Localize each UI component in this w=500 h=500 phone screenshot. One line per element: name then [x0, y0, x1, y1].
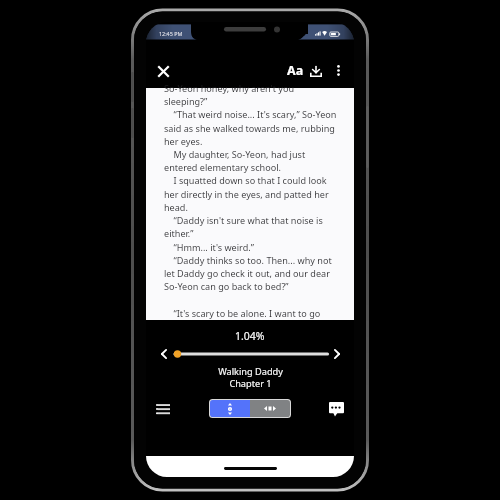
staticText: 12:45 PM [159, 30, 183, 37]
staticText: sleeping?” [164, 95, 208, 107]
staticText: said as she walked towards me, rubbing [164, 122, 335, 134]
button[interactable]: Horizontal scrolling [250, 400, 290, 417]
staticText: Aa [287, 62, 304, 79]
staticText: “Daddy isn't sure what that noise is [164, 214, 323, 226]
button[interactable]: Reading progress [171, 345, 329, 363]
staticText: “That weird noise... It's scary,” So-Yeo… [164, 108, 337, 120]
staticText: So-Yeon honey, why aren't you [164, 82, 295, 94]
staticText: her directly in the eyes, and patted her [164, 188, 329, 200]
button[interactable]: Close [152, 60, 174, 82]
staticText: “Daddy thinks so too. Then... why not [164, 254, 332, 266]
button[interactable]: Next page [327, 345, 346, 363]
staticText: entered elementary school. [164, 161, 281, 173]
button[interactable]: Vertical scrolling [210, 400, 250, 417]
button[interactable]: More options [329, 61, 347, 79]
button[interactable]: Text settings [282, 61, 309, 79]
staticText: either.” [164, 227, 194, 239]
button[interactable]: Table of contents [151, 398, 175, 420]
staticText: “It's scary to be alone. I want to go [164, 307, 321, 319]
staticText: I squatted down so that I could look [164, 174, 327, 186]
staticText: let Daddy go check it out, and our dear [164, 267, 330, 279]
staticText: Walking Daddy [218, 365, 283, 378]
button[interactable]: Home [224, 467, 277, 470]
button[interactable]: Download [306, 61, 326, 81]
staticText: So-Yeon can go back to bed?” [164, 280, 289, 292]
staticText: head. [164, 201, 188, 213]
staticText: Chapter 1 [229, 377, 272, 390]
staticText: 1.04% [235, 329, 265, 343]
staticText: My daughter, So-Yeon, had just [164, 148, 306, 160]
staticText: “Hmm... it's weird.” [164, 241, 254, 253]
button[interactable]: Previous page [154, 345, 173, 363]
staticText: her eyes. [164, 135, 203, 147]
button[interactable]: Comments [324, 398, 349, 420]
